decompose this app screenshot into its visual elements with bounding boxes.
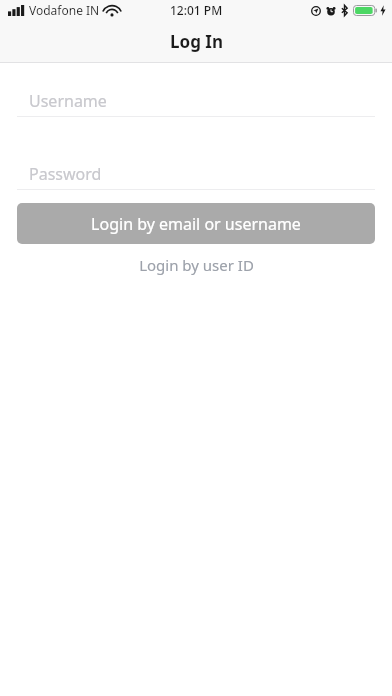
button[interactable]: Login by email or username xyxy=(17,203,375,244)
staticText: Username xyxy=(29,90,107,112)
button[interactable]: Username xyxy=(17,86,375,116)
button[interactable]: Password xyxy=(17,159,375,189)
staticText: Log In xyxy=(170,30,223,53)
button[interactable]: Login by user ID xyxy=(0,244,392,286)
staticText: Password xyxy=(29,163,102,185)
staticText: Login by user ID xyxy=(139,255,254,275)
staticText: 12:01 PM xyxy=(170,2,223,18)
staticText: Login by email or username xyxy=(91,213,301,235)
staticText: Vodafone IN xyxy=(29,2,100,18)
